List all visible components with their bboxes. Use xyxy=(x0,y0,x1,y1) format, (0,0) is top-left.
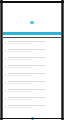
button[interactable] xyxy=(3,54,61,62)
button[interactable] xyxy=(3,102,61,110)
button[interactable] xyxy=(3,70,61,78)
button[interactable] xyxy=(3,46,61,54)
button[interactable] xyxy=(3,94,61,102)
button[interactable] xyxy=(3,78,61,86)
button[interactable] xyxy=(3,62,61,70)
button[interactable] xyxy=(3,86,61,94)
button[interactable] xyxy=(3,38,61,46)
button[interactable]: Add xyxy=(31,117,34,120)
